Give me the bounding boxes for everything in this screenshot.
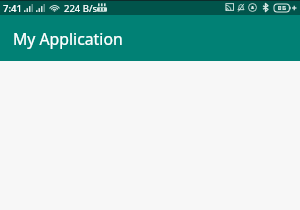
other: VoLTE [97, 3, 107, 12]
other: Bluetooth [262, 3, 269, 12]
other: Mobile signal [36, 4, 45, 12]
staticText: 224 B/s [64, 2, 98, 15]
other: Alarm [248, 3, 257, 12]
other: Wi-Fi [49, 4, 60, 12]
other: Battery 86 percent, charging [274, 4, 296, 12]
other: Mobile signal [24, 4, 33, 12]
staticText: My Application [13, 28, 123, 50]
other: Cast [225, 3, 234, 11]
button[interactable]: My Application [0, 15, 300, 61]
staticText: 7:41 [3, 2, 22, 15]
other: Silent [237, 3, 245, 12]
